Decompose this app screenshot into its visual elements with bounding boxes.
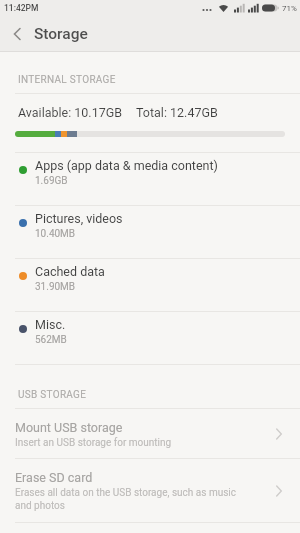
button[interactable]: Apps (app data & media content) [0, 153, 300, 206]
staticText: USB STORAGE [18, 389, 87, 401]
staticText: Misc. [35, 317, 66, 332]
staticText: 11:42PM [4, 3, 39, 13]
button[interactable]: Misc. [0, 312, 300, 365]
button[interactable]: Storage [0, 16, 300, 51]
staticText: Apps (app data & media content) [35, 158, 218, 173]
staticText: 10.40MB [35, 228, 76, 240]
staticText: Cached data [35, 264, 105, 279]
staticText: Erases all data on the USB storage, such… [15, 487, 237, 512]
staticText: INTERNAL STORAGE [18, 74, 116, 86]
staticText: 1.69GB [35, 175, 68, 187]
staticText: 31.90MB [35, 281, 76, 293]
staticText: Insert an USB storage for mounting [15, 437, 172, 449]
button[interactable]: Mount USB storage [0, 409, 300, 459]
staticText: Mount USB storage [15, 420, 123, 435]
button[interactable]: Erase SD card [0, 459, 300, 523]
button[interactable]: Pictures, videos [0, 206, 300, 259]
button[interactable]: Cached data [0, 259, 300, 312]
staticText: Total: 12.47GB [136, 105, 218, 120]
staticText: Pictures, videos [35, 211, 123, 226]
staticText: Available: 10.17GB [18, 105, 123, 120]
staticText: 71% [282, 4, 297, 13]
staticText: 562MB [35, 334, 67, 346]
staticText: Storage [34, 25, 88, 43]
staticText: Erase SD card [15, 470, 93, 485]
